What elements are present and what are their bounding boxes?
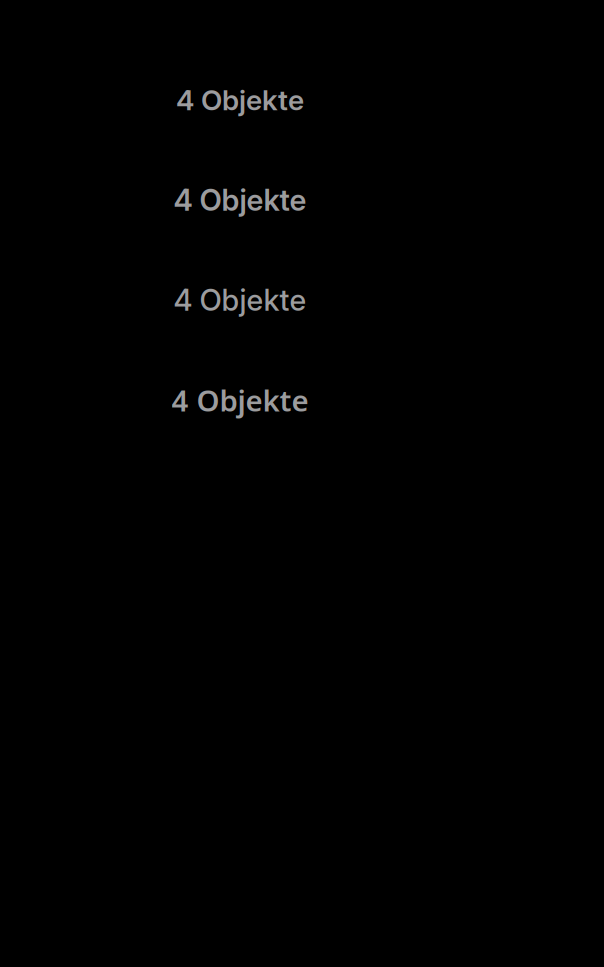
staticText: 4 Objekte — [176, 83, 304, 117]
staticText: 4 Objekte — [171, 380, 308, 419]
staticText: 4 Objekte — [173, 182, 306, 218]
staticText: 4 Objekte — [173, 282, 306, 318]
